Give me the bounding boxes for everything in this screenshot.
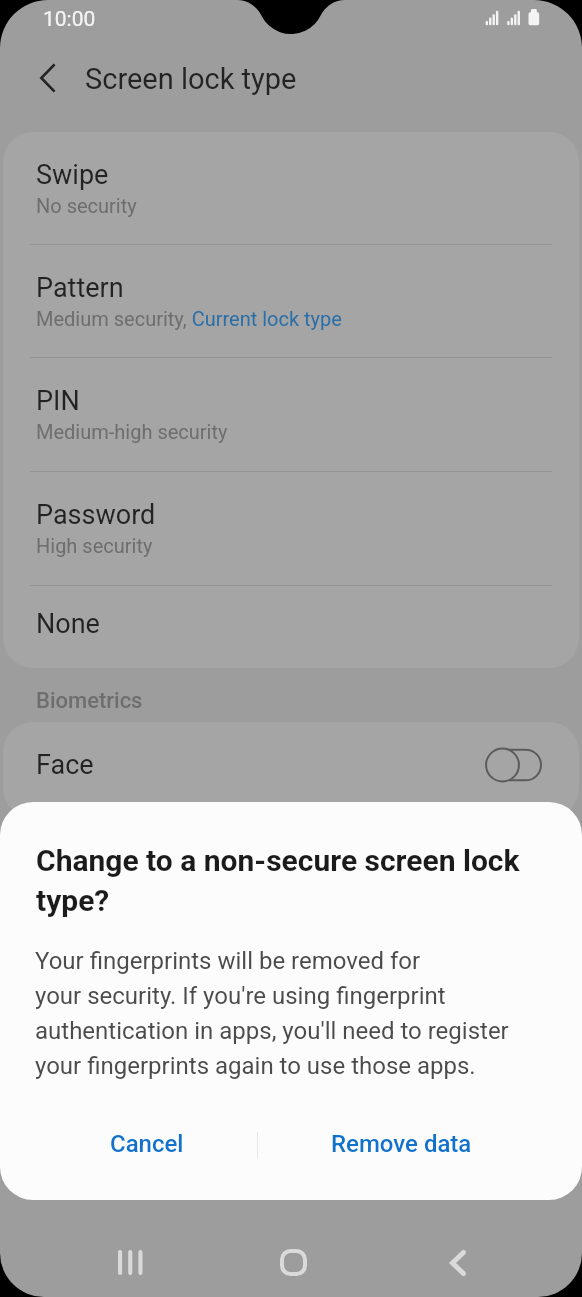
staticText: 10:00 (43, 7, 96, 32)
staticText: Face (36, 749, 94, 781)
staticText: Screen lock type (85, 62, 297, 96)
staticText: Remove data (331, 1130, 472, 1158)
staticText: Swipe (36, 159, 109, 191)
button[interactable]: Face (3, 722, 579, 818)
button[interactable]: Home (269, 1238, 318, 1287)
staticText: Your fingerprints will be removed for yo… (35, 941, 509, 1081)
button[interactable]: Remove data (257, 1102, 582, 1200)
button[interactable]: Recent apps (106, 1238, 155, 1287)
staticText: No security (36, 194, 137, 218)
button[interactable]: Back (433, 1238, 482, 1287)
button[interactable]: Face unlock toggle, off (485, 747, 541, 783)
staticText: Medium security, Current lock type (36, 307, 342, 331)
staticText: High security (36, 534, 153, 558)
staticText: Change to a non-secure screen lock type? (36, 839, 520, 919)
staticText: Pattern (36, 272, 124, 304)
button[interactable]: PIN (3, 358, 579, 471)
staticText: Password (36, 499, 156, 531)
button[interactable]: Cancel (0, 1102, 257, 1200)
staticText: Cancel (110, 1130, 184, 1158)
button[interactable]: Navigate up (23, 53, 72, 102)
staticText: PIN (36, 385, 80, 417)
staticText: Biometrics (36, 688, 143, 714)
button[interactable]: Password (3, 472, 579, 585)
button[interactable]: Pattern (3, 245, 579, 357)
staticText: None (36, 608, 100, 640)
staticText: Medium-high security (36, 420, 228, 444)
button[interactable]: None (3, 586, 579, 668)
button[interactable]: Swipe (3, 132, 579, 244)
